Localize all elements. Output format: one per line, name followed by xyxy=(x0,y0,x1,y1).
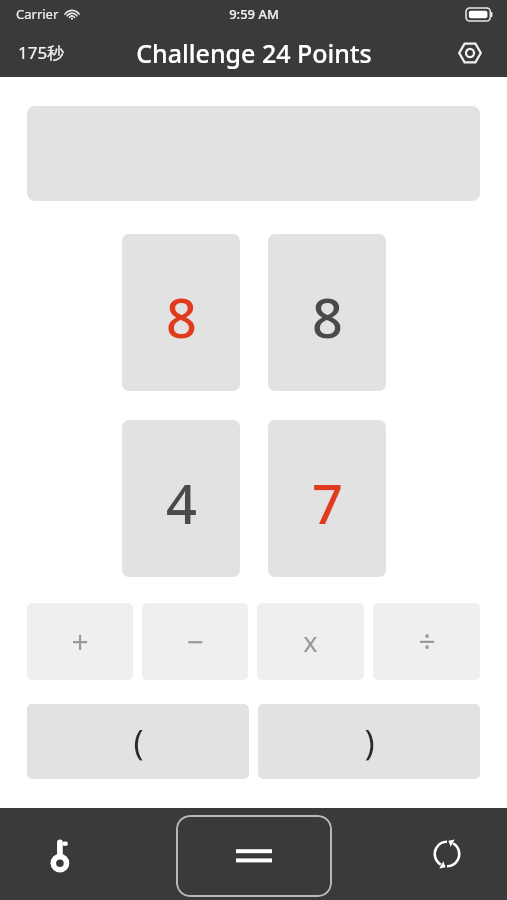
staticText: 9:59 AM xyxy=(229,5,279,23)
button[interactable]: 7 xyxy=(268,420,386,577)
button[interactable]: 4 xyxy=(122,420,240,577)
staticText: ÷ xyxy=(418,621,436,662)
button[interactable]: Refresh xyxy=(425,832,469,876)
button[interactable]: plus xyxy=(27,603,133,680)
button[interactable]: times xyxy=(257,603,364,680)
button[interactable]: divide xyxy=(373,603,480,680)
staticText: ) xyxy=(364,719,375,765)
staticText: 8 xyxy=(166,280,197,354)
staticText: x xyxy=(303,623,318,660)
button[interactable]: 8 xyxy=(268,234,386,391)
staticText: Carrier xyxy=(16,5,59,23)
button[interactable]: ) xyxy=(258,704,480,779)
button[interactable]: ( xyxy=(27,704,249,779)
button[interactable]: Settings xyxy=(453,36,487,70)
staticText: 7 xyxy=(312,466,343,540)
button[interactable]: minus xyxy=(142,603,248,680)
staticText: Challenge 24 Points xyxy=(136,36,372,70)
staticText: ( xyxy=(133,719,144,765)
button[interactable]: 8 xyxy=(122,234,240,391)
staticText: 8 xyxy=(312,280,343,354)
staticText: + xyxy=(71,621,89,662)
staticText: 175秒 xyxy=(18,41,65,64)
staticText: − xyxy=(186,621,204,662)
button[interactable]: 175秒 xyxy=(18,41,65,64)
staticText: 4 xyxy=(166,466,197,540)
button[interactable]: Hint xyxy=(40,832,84,876)
button[interactable] xyxy=(176,815,332,897)
